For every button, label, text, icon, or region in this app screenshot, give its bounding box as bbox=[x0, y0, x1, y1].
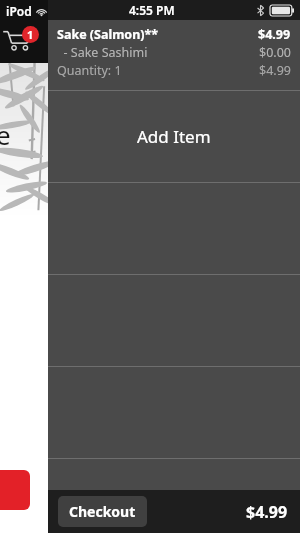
button[interactable]: Add Item bbox=[48, 91, 300, 182]
staticText: $4.99 bbox=[246, 501, 288, 523]
staticText: e bbox=[0, 117, 11, 152]
staticText: 1 bbox=[27, 27, 34, 42]
button[interactable]: Cart bbox=[2, 27, 46, 59]
button[interactable]: Checkout bbox=[58, 496, 147, 527]
button[interactable]: Sake (Salmon)** bbox=[48, 20, 300, 90]
button[interactable]: Order bbox=[0, 470, 30, 510]
staticText: $4.99 bbox=[259, 62, 291, 79]
staticText: Add Item bbox=[137, 125, 211, 148]
staticText: $0.00 bbox=[259, 44, 291, 61]
staticText: $4.99 bbox=[258, 26, 291, 43]
staticText: Checkout bbox=[69, 502, 136, 521]
staticText: iPod bbox=[6, 3, 32, 19]
staticText: - Sake Sashimi bbox=[57, 44, 148, 61]
staticText: Quantity: 1 bbox=[57, 62, 122, 79]
staticText: Sake (Salmon)** bbox=[57, 26, 159, 43]
staticText: 4:55 PM bbox=[129, 2, 175, 18]
